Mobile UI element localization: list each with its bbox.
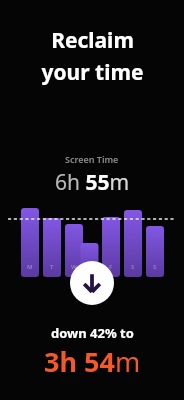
staticText: 3h 54m [44,343,141,380]
staticText: S [131,263,135,271]
button[interactable]: Reduce screen time [70,261,114,305]
staticText: Screen Time [65,153,119,165]
staticText: W [71,263,77,271]
staticText: Reclaim [51,26,134,55]
staticText: T [50,263,54,271]
staticText: F [109,263,113,271]
staticText: S [153,263,157,271]
staticText: 6h 55m [55,168,130,197]
staticText: your time [41,58,144,87]
staticText: M [27,263,33,271]
staticText: down 42% to [51,324,134,342]
